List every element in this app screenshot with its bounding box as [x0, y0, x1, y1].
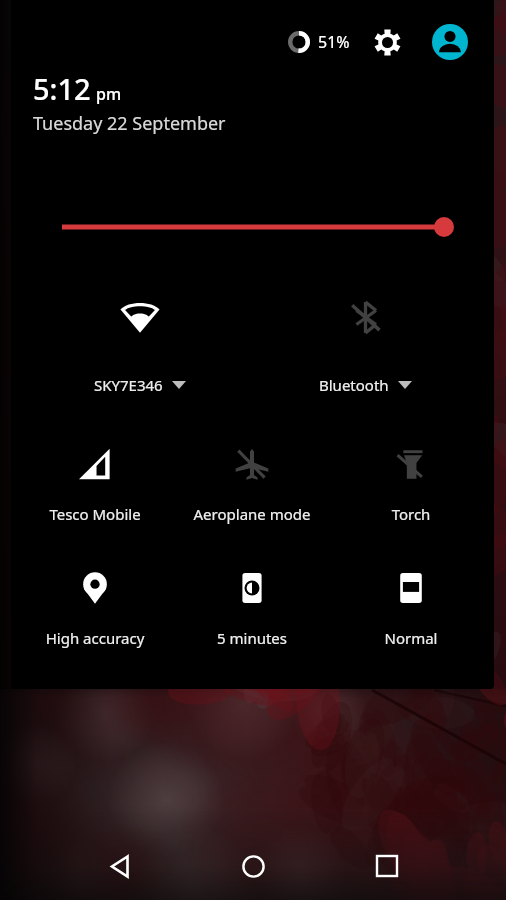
- staticText: 5:12: [33, 69, 91, 108]
- staticText: Tesco Mobile: [20, 504, 170, 524]
- staticText: Bluetooth: [319, 375, 389, 395]
- button[interactable]: 5 minutes: [177, 562, 327, 648]
- staticText: High accuracy: [20, 628, 170, 648]
- button[interactable]: High accuracy: [20, 562, 170, 648]
- staticText: Tuesday 22 September: [33, 111, 226, 136]
- staticText: Torch: [336, 504, 486, 524]
- button[interactable]: Aeroplane mode: [177, 438, 327, 524]
- button[interactable]: Brightness: [50, 210, 460, 244]
- button[interactable]: Settings: [369, 24, 405, 60]
- button[interactable]: Tesco Mobile: [20, 438, 170, 524]
- button[interactable]: Bluetooth: [265, 291, 465, 395]
- button[interactable]: Recents: [363, 842, 411, 890]
- staticText: 5 minutes: [177, 628, 327, 648]
- staticText: pm: [96, 83, 122, 105]
- staticText: SKY7E346: [94, 375, 163, 395]
- staticText: Aeroplane mode: [177, 504, 327, 524]
- staticText: 51%: [318, 31, 350, 53]
- button[interactable]: SKY7E346: [40, 290, 240, 395]
- button[interactable]: Home: [229, 842, 277, 890]
- button[interactable]: Battery 51 percent: [288, 31, 350, 53]
- button[interactable]: Back: [96, 842, 144, 890]
- staticText: Normal: [336, 628, 486, 648]
- button[interactable]: User profile: [432, 24, 468, 60]
- button[interactable]: Torch: [336, 438, 486, 524]
- button[interactable]: Normal: [336, 562, 486, 648]
